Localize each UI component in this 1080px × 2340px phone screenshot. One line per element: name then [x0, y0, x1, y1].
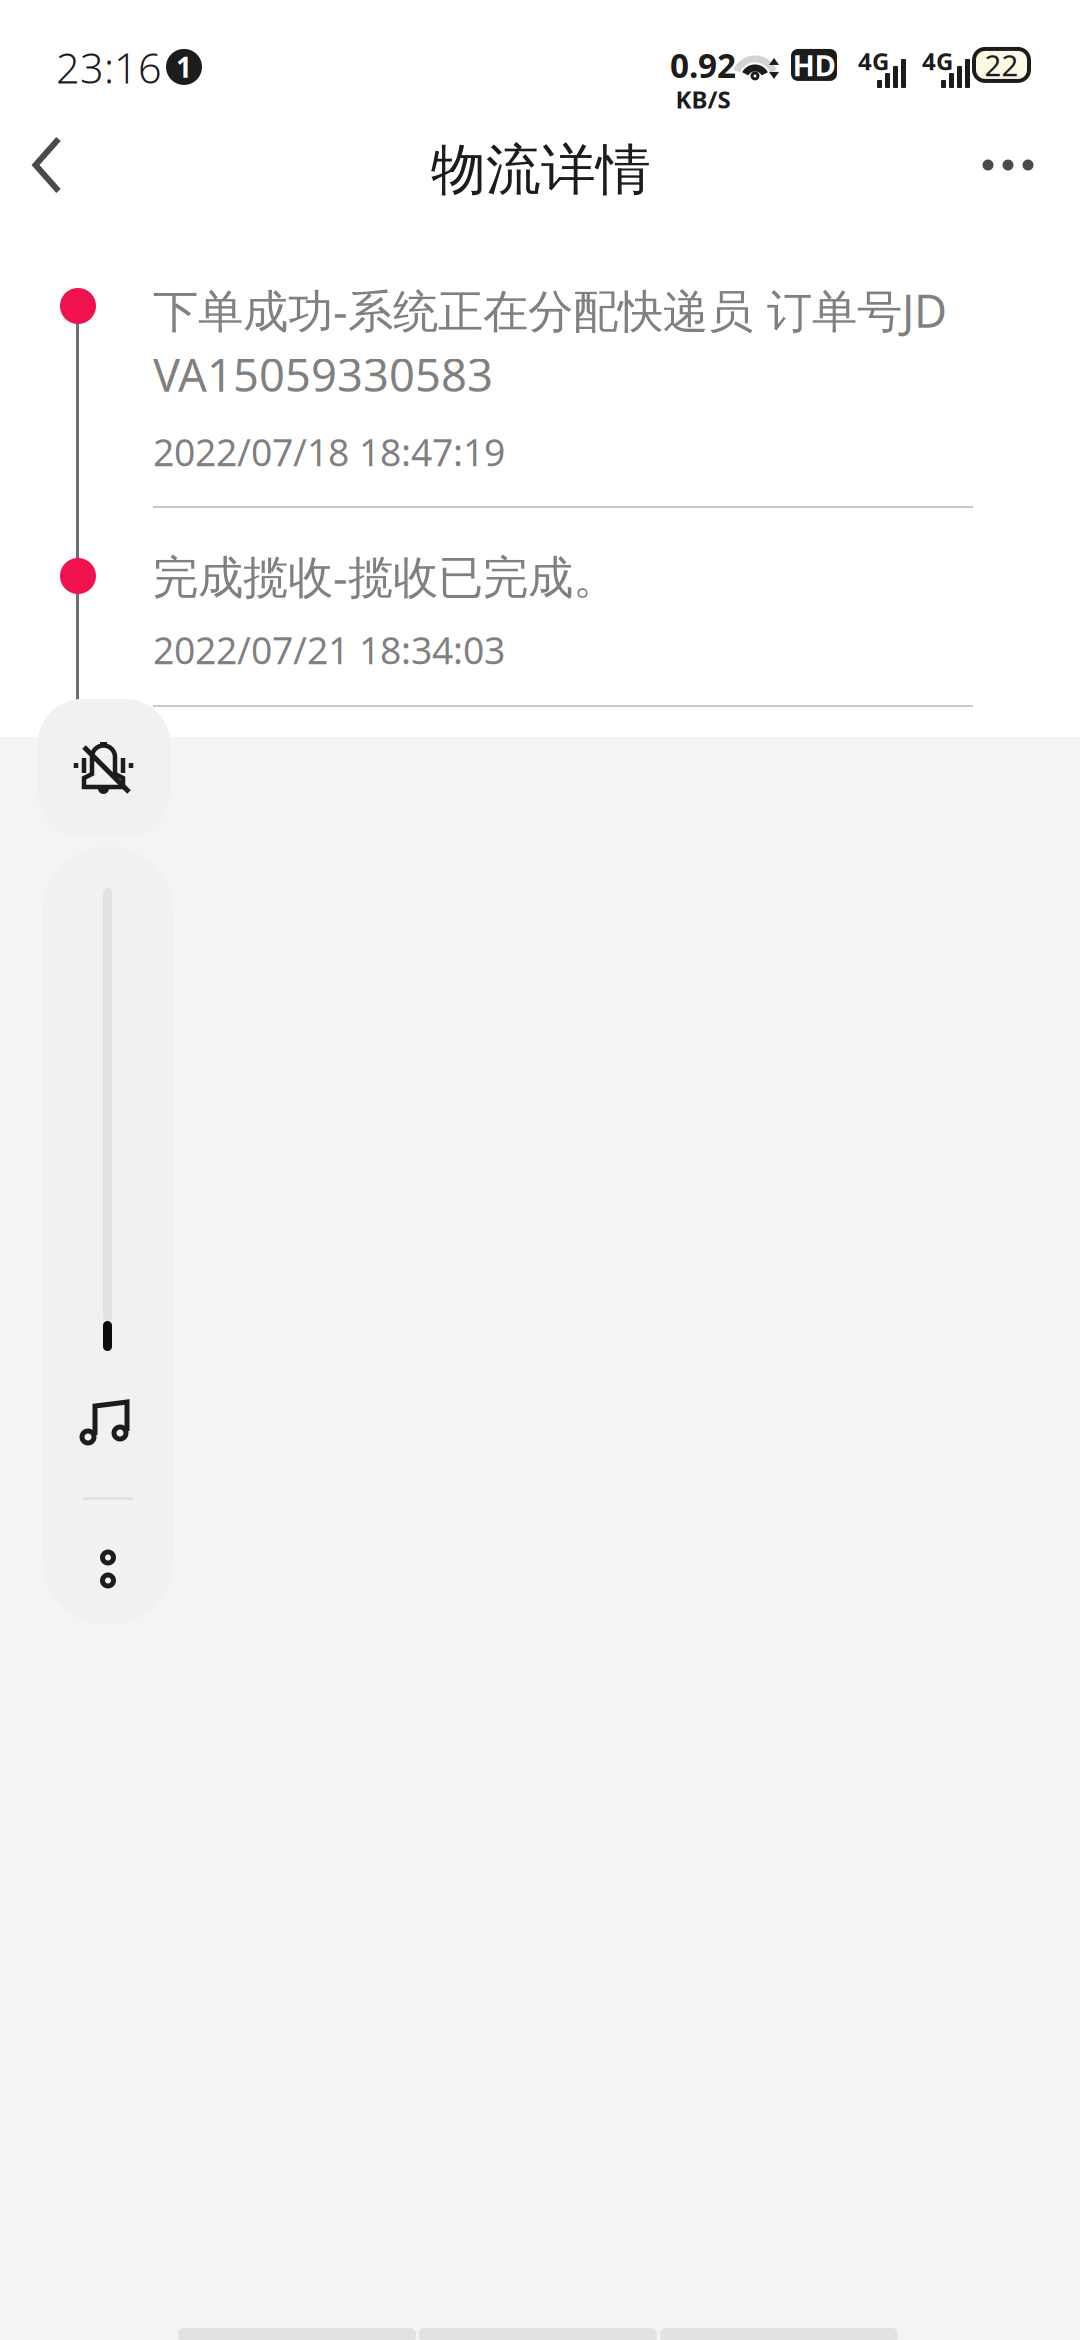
staticText: 完成揽收-揽收已完成。	[153, 546, 618, 606]
staticText: 23:16	[56, 40, 162, 95]
staticText: 22	[984, 45, 1018, 84]
staticText: HD	[792, 45, 835, 84]
staticText: 下单成功-系统正在分配快递员 订单号JD	[153, 280, 947, 340]
staticText: 物流详情	[431, 136, 651, 203]
staticText: VA15059330583	[153, 344, 493, 404]
staticText: 4G	[858, 45, 889, 77]
button[interactable]: Media volume	[40, 1386, 172, 1458]
staticText: 1	[176, 48, 192, 85]
staticText: KB/S	[675, 83, 730, 115]
button[interactable]: Back	[0, 110, 95, 220]
staticText: 0.92	[670, 43, 736, 87]
staticText: 4G	[922, 45, 953, 77]
button[interactable]: Silent mode	[38, 699, 170, 837]
button[interactable]: More volume controls	[42, 1533, 174, 1605]
staticText: 2022/07/18 18:47:19	[153, 427, 505, 477]
button[interactable]: More options	[960, 110, 1056, 220]
staticText: 2022/07/21 18:34:03	[153, 625, 505, 675]
